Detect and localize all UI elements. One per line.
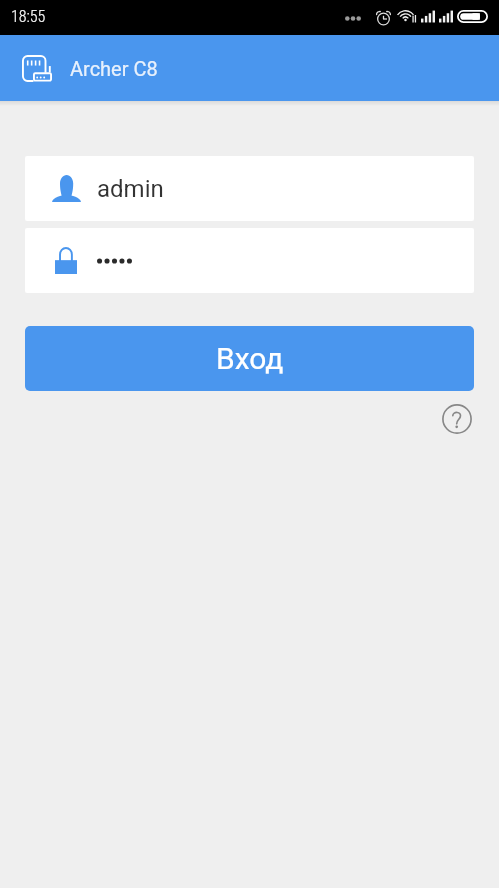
button[interactable]: admin bbox=[25, 156, 474, 221]
staticText: admin bbox=[97, 175, 164, 203]
staticText: Вход bbox=[216, 341, 284, 376]
button[interactable]: Вход bbox=[25, 326, 474, 391]
staticText: Archer C8 bbox=[70, 57, 158, 80]
button[interactable] bbox=[25, 228, 474, 293]
button[interactable]: Help bbox=[442, 404, 472, 434]
staticText: 18:55 bbox=[11, 7, 46, 26]
